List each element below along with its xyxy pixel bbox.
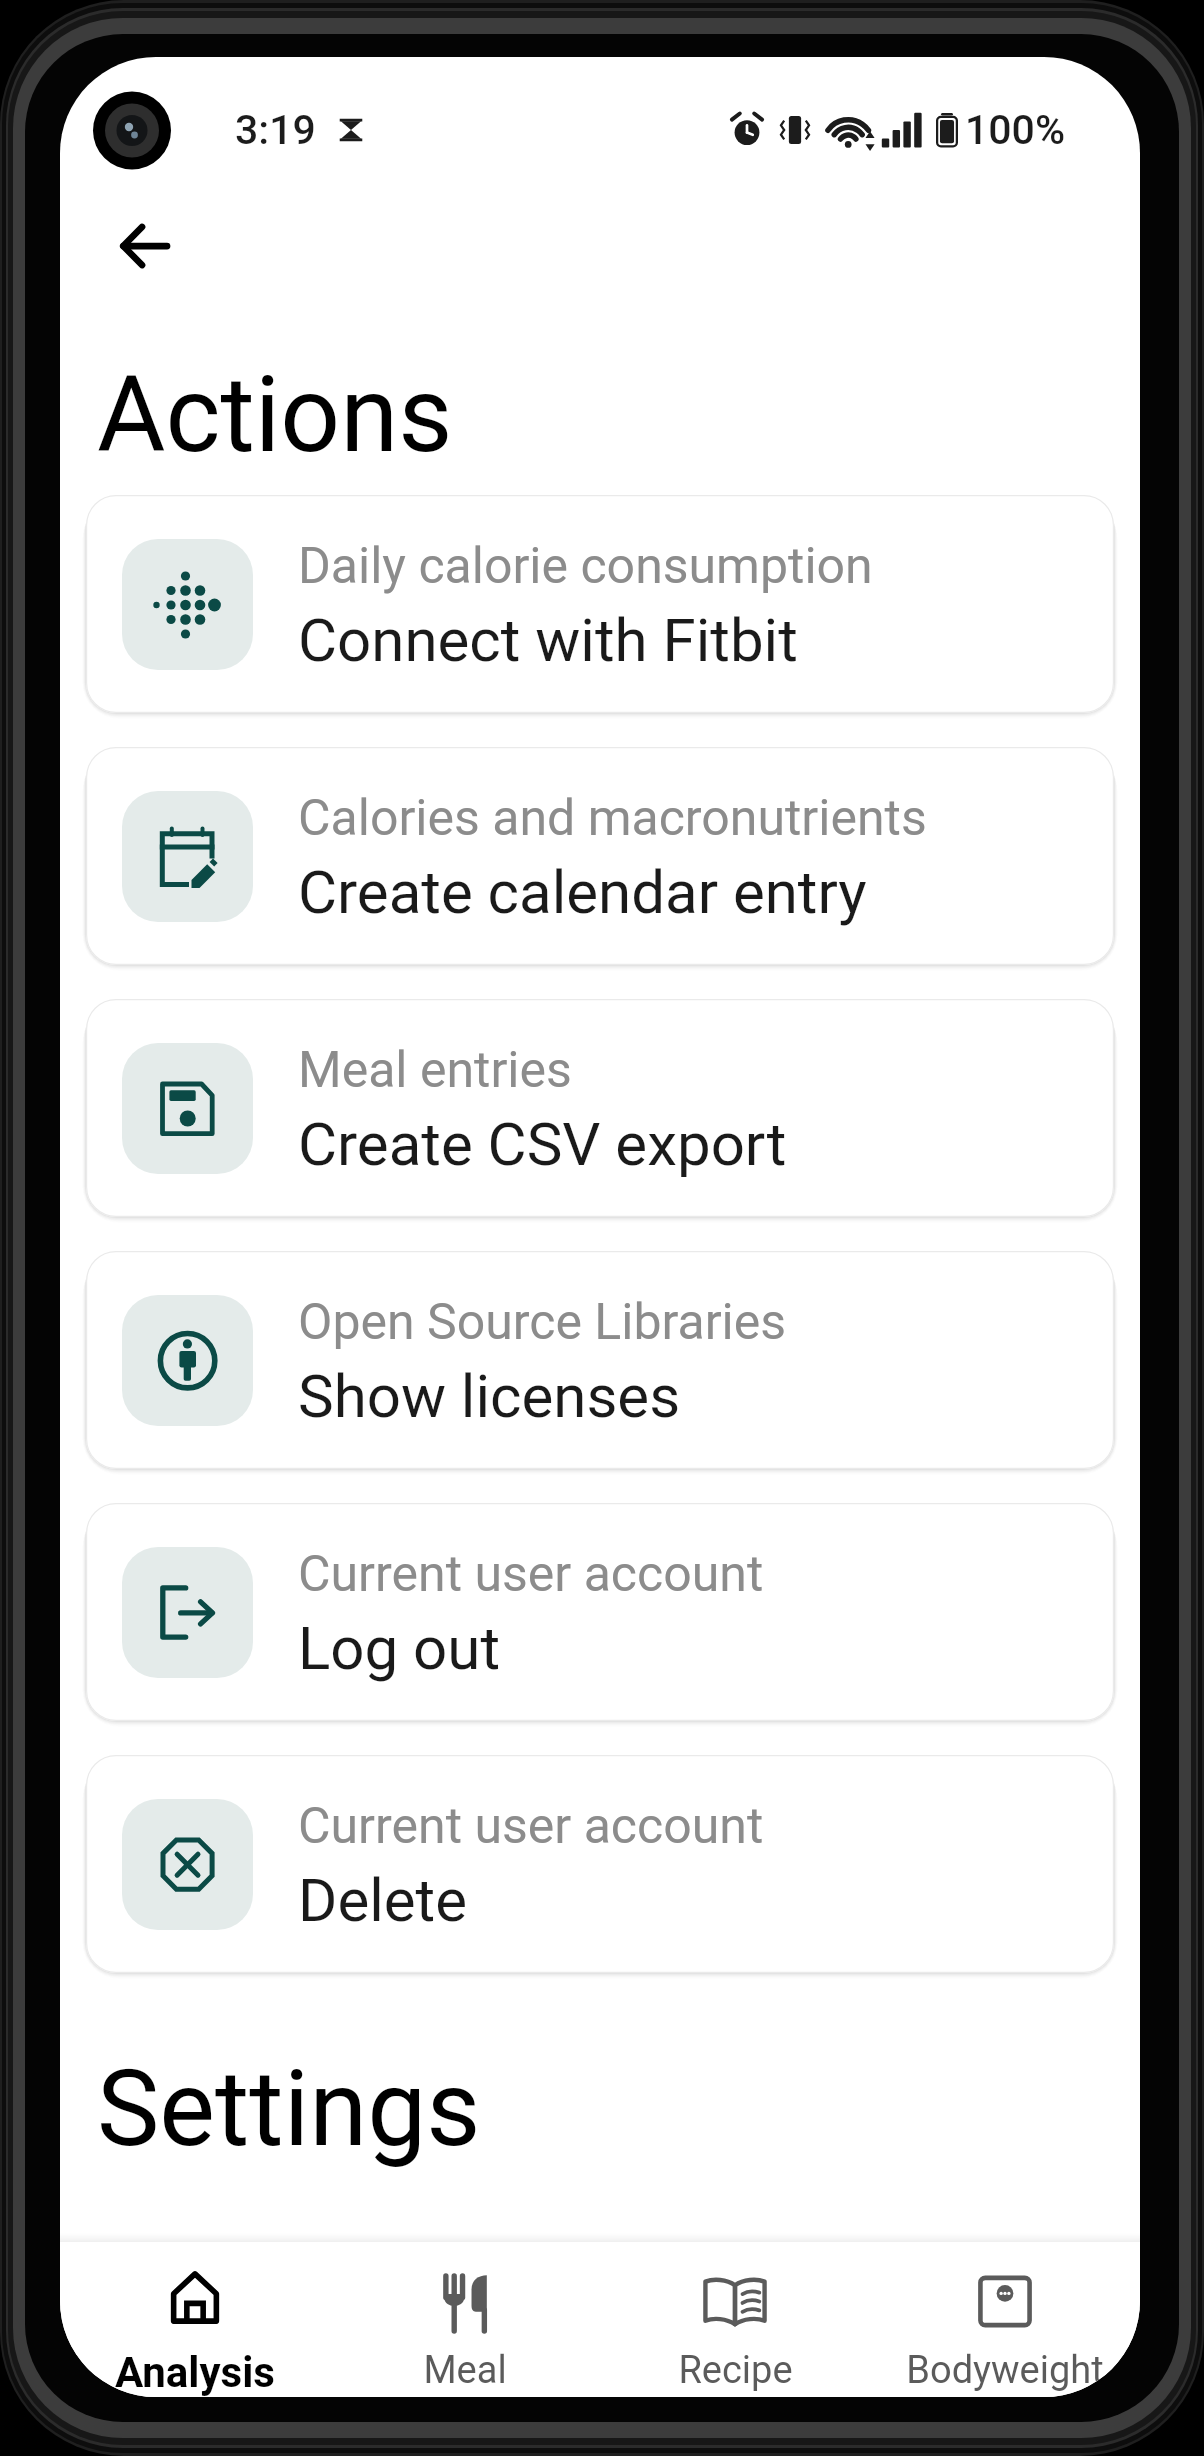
staticText: Create CSV export [298, 1109, 787, 1179]
staticText: Connect with Fitbit [298, 605, 798, 675]
staticText: Open Source Libraries [298, 1293, 787, 1352]
staticText: 100% [965, 106, 1066, 154]
staticText: Show licenses [298, 1361, 681, 1431]
staticText: Bodyweight [906, 2348, 1104, 2393]
staticText: Recipe [678, 2348, 793, 2393]
button[interactable]: Bodyweight [870, 2242, 1140, 2393]
staticText: Daily calorie consumption [298, 537, 873, 596]
staticText: Current user account [298, 1545, 764, 1604]
staticText: Log out [298, 1613, 501, 1683]
button[interactable]: Calories and macronutrients [86, 747, 1114, 965]
button[interactable]: Open Source Libraries [86, 1251, 1114, 1469]
staticText: Analysis [115, 2348, 275, 2397]
staticText: Meal entries [298, 1041, 572, 1100]
staticText: 3:19 [235, 106, 316, 154]
staticText: Create calendar entry [298, 857, 867, 927]
button[interactable]: Current user account [86, 1503, 1114, 1721]
staticText: Calories and macronutrients [298, 789, 927, 848]
button[interactable]: Current user account [86, 1755, 1114, 1973]
staticText: Delete [298, 1865, 468, 1935]
staticText: Current user account [298, 1797, 764, 1856]
button[interactable]: Daily calorie consumption [86, 495, 1114, 713]
staticText: Actions [97, 354, 453, 477]
staticText: Settings [97, 2048, 481, 2171]
button[interactable]: Analysis [60, 2242, 330, 2397]
button[interactable]: Back [102, 204, 186, 288]
button[interactable]: Meal [330, 2242, 600, 2393]
staticText: Meal [423, 2348, 507, 2393]
button[interactable]: Meal entries [86, 999, 1114, 1217]
button[interactable]: Recipe [600, 2242, 870, 2393]
